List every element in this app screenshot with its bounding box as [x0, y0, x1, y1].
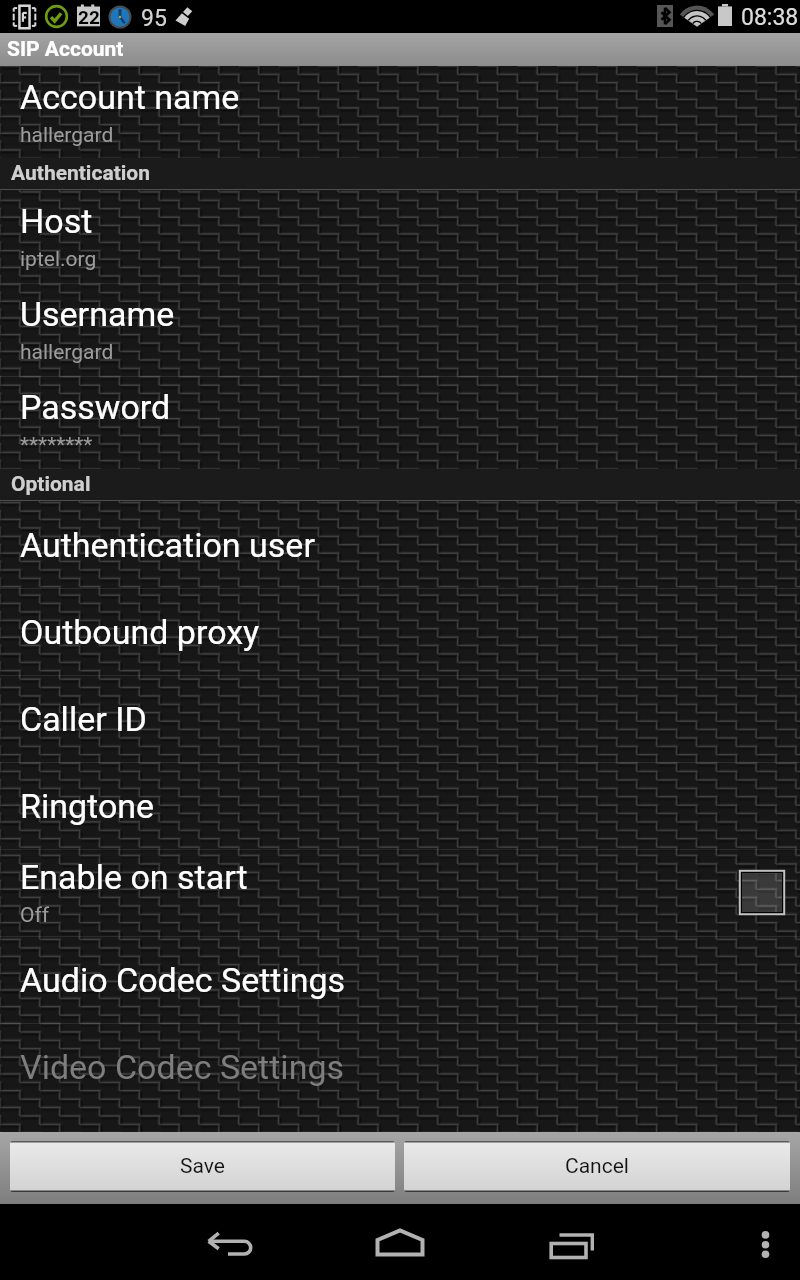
staticText: Caller ID [20, 699, 147, 739]
staticText: Host [20, 201, 93, 241]
staticText: Account name [20, 77, 240, 117]
button[interactable]: Save [10, 1141, 395, 1192]
button[interactable]: Video Codec Settings [0, 1023, 800, 1110]
staticText: Authentication [11, 161, 150, 186]
staticText: Save [180, 1154, 225, 1179]
button[interactable]: Cancel [404, 1141, 790, 1192]
staticText: ******** [20, 433, 93, 458]
staticText: Ringtone [20, 786, 155, 826]
button[interactable]: Enable on start [741, 872, 783, 913]
button[interactable]: More options [735, 1207, 797, 1276]
staticText: Cancel [565, 1154, 629, 1179]
staticText: 22 [78, 6, 100, 28]
button[interactable]: Recent apps [532, 1207, 612, 1277]
button[interactable]: Home [360, 1207, 440, 1277]
button[interactable]: Enable on start [0, 849, 800, 936]
button[interactable]: Ringtone [0, 762, 800, 849]
staticText: SIP Account [7, 37, 124, 62]
staticText: Optional [11, 472, 91, 497]
button[interactable]: Password [0, 376, 800, 469]
button[interactable]: Authentication user [0, 501, 800, 588]
staticText: hallergard [20, 340, 114, 365]
button[interactable]: Back [188, 1207, 272, 1277]
staticText: Username [20, 294, 175, 334]
button[interactable]: Caller ID [0, 675, 800, 762]
staticText: Password [20, 387, 171, 427]
staticText: 08:38 [741, 4, 799, 31]
button[interactable]: Host [0, 190, 800, 283]
staticText: Video Codec Settings [20, 1047, 345, 1087]
staticText: 95 [141, 5, 167, 32]
staticText: Audio Codec Settings [20, 960, 346, 1000]
staticText: Outbound proxy [20, 612, 260, 652]
button[interactable]: Outbound proxy [0, 588, 800, 675]
button[interactable]: Audio Codec Settings [0, 936, 800, 1023]
staticText: Enable on start [20, 857, 248, 897]
staticText: hallergard [20, 123, 114, 148]
staticText: iptel.org [20, 247, 97, 272]
button[interactable]: Account name [0, 66, 800, 158]
staticText: Authentication user [20, 525, 315, 565]
button[interactable]: Username [0, 283, 800, 376]
staticText: Off [20, 903, 50, 928]
